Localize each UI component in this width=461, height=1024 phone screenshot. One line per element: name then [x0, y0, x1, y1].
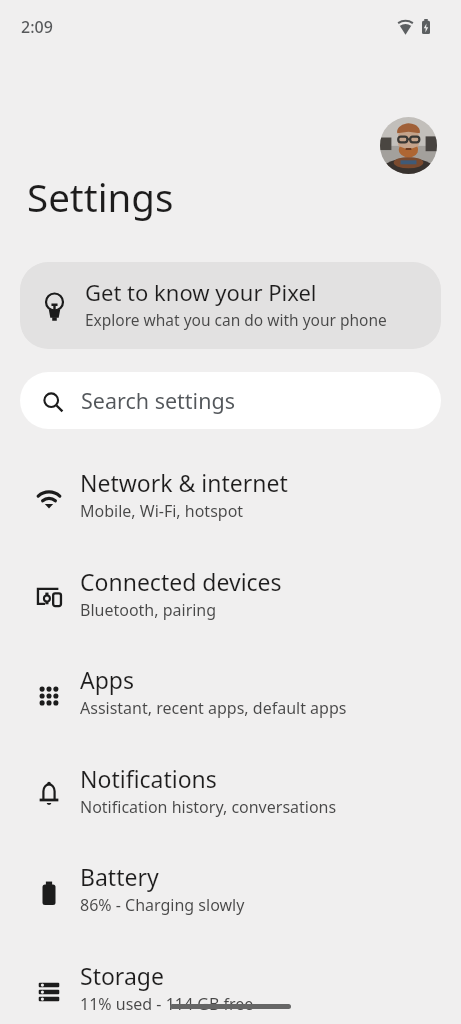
- staticText: Bluetooth, pairing: [80, 599, 217, 621]
- button[interactable]: Connected devices: [0, 548, 461, 646]
- staticText: Network & internet: [80, 467, 288, 498]
- staticText: Get to know your Pixel: [85, 277, 317, 307]
- button[interactable]: Storage: [0, 942, 461, 1024]
- staticText: Storage: [80, 960, 164, 991]
- staticText: Explore what you can do with your phone: [85, 309, 387, 330]
- staticText: 11% used - 114 GB free: [80, 993, 254, 1015]
- staticText: Battery: [80, 861, 159, 892]
- button[interactable]: Network & internet: [0, 449, 461, 548]
- staticText: Settings: [27, 171, 174, 223]
- staticText: Notifications: [80, 763, 217, 794]
- button[interactable]: [380, 117, 437, 174]
- button[interactable]: Get to know your Pixel: [20, 262, 441, 349]
- staticText: Apps: [80, 664, 135, 695]
- staticText: Mobile, Wi-Fi, hotspot: [80, 500, 244, 522]
- staticText: Search settings: [81, 386, 235, 415]
- button[interactable]: Search settings: [20, 372, 441, 429]
- staticText: Assistant, recent apps, default apps: [80, 697, 347, 719]
- button[interactable]: Notifications: [0, 745, 461, 843]
- button[interactable]: Apps: [0, 646, 461, 745]
- staticText: Notification history, conversations: [80, 796, 337, 818]
- staticText: Connected devices: [80, 566, 282, 597]
- button[interactable]: Battery: [0, 843, 461, 942]
- staticText: 86% - Charging slowly: [80, 894, 245, 916]
- staticText: 2:09: [21, 16, 53, 38]
